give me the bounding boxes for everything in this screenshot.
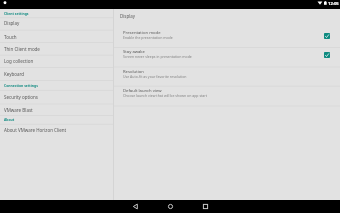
button[interactable]: VMware Blast bbox=[0, 104, 113, 116]
staticText: Screen never sleeps in presentation mode bbox=[123, 54, 192, 59]
staticText: Thin Client mode bbox=[4, 46, 40, 52]
staticText: 12:05 bbox=[328, 1, 339, 7]
staticText: Connection settings bbox=[4, 83, 38, 88]
button[interactable]: Display bbox=[0, 17, 113, 29]
button[interactable]: Back bbox=[129, 200, 142, 213]
staticText: About VMware Horizon Client bbox=[4, 127, 67, 133]
staticText: Display bbox=[120, 13, 135, 19]
staticText: Security options bbox=[4, 94, 38, 100]
button[interactable]: Stay awake bbox=[114, 47, 340, 67]
button[interactable]: Keyboard bbox=[0, 67, 113, 80]
button[interactable]: Log collection bbox=[0, 55, 113, 67]
staticText: Default launch view bbox=[123, 88, 162, 94]
button[interactable]: About bbox=[0, 115, 113, 124]
staticText: About bbox=[4, 117, 15, 122]
button[interactable]: Touch bbox=[0, 30, 113, 43]
staticText: Presentation mode bbox=[123, 30, 161, 36]
staticText: Client settings bbox=[4, 11, 29, 16]
staticText: VMware Blast bbox=[4, 107, 33, 113]
staticText: Keyboard bbox=[4, 71, 25, 77]
staticText: Display bbox=[4, 20, 20, 26]
button[interactable]: Default launch view bbox=[114, 86, 340, 106]
staticText: Use Auto-fit as your favorite resolution bbox=[123, 74, 187, 79]
button[interactable]: Recents bbox=[199, 200, 212, 213]
button[interactable]: Resolution bbox=[114, 67, 340, 86]
button[interactable]: Security options bbox=[0, 90, 113, 104]
button[interactable]: Home bbox=[164, 200, 177, 213]
button[interactable]: Client settings bbox=[0, 9, 113, 17]
staticText: Stay awake bbox=[123, 49, 145, 55]
button[interactable]: Thin Client mode bbox=[0, 42, 113, 55]
staticText: Touch bbox=[4, 34, 17, 40]
staticText: Choose launch view that will be shown on… bbox=[123, 93, 208, 98]
staticText: Log collection bbox=[4, 58, 34, 64]
staticText: Resolution bbox=[123, 69, 144, 75]
staticText: Enable the presentation mode bbox=[123, 35, 173, 40]
button[interactable]: About VMware Horizon Client bbox=[0, 124, 113, 136]
button[interactable]: Presentation mode bbox=[114, 28, 340, 47]
button[interactable]: Connection settings bbox=[0, 80, 113, 90]
